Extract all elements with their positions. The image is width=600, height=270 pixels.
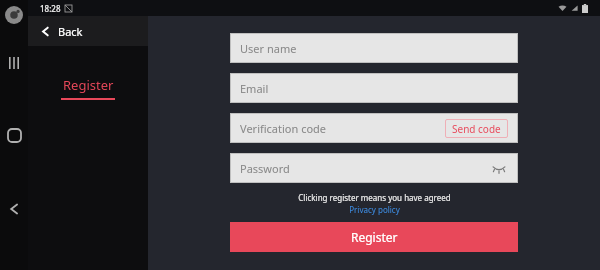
- staticText: Verification code: [240, 121, 327, 136]
- staticText: Send code: [452, 122, 501, 136]
- button[interactable]: Password: [230, 153, 518, 183]
- button[interactable]: Register: [28, 76, 148, 100]
- staticText: Register: [63, 76, 114, 94]
- button[interactable]: Email: [230, 73, 518, 103]
- button[interactable]: Back: [3, 198, 25, 220]
- staticText: Register: [351, 229, 398, 245]
- button[interactable]: Privacy policy: [349, 204, 400, 215]
- button[interactable]: Back: [28, 16, 148, 46]
- button[interactable]: User name: [230, 33, 518, 63]
- button[interactable]: Show password: [490, 159, 508, 177]
- button[interactable]: Verification code: [230, 113, 518, 143]
- button[interactable]: Send code: [445, 119, 508, 138]
- staticText: Email: [240, 81, 269, 96]
- staticText: Password: [240, 161, 290, 176]
- staticText: Clicking register means you have agreed: [298, 192, 451, 203]
- button[interactable]: App logo: [5, 6, 23, 24]
- button[interactable]: Register: [230, 222, 518, 252]
- button[interactable]: Recent apps: [3, 52, 25, 74]
- staticText: 18:28: [40, 3, 61, 14]
- staticText: Privacy policy: [349, 204, 400, 215]
- button[interactable]: Home: [3, 124, 25, 146]
- staticText: Back: [58, 24, 83, 39]
- staticText: User name: [240, 41, 297, 56]
